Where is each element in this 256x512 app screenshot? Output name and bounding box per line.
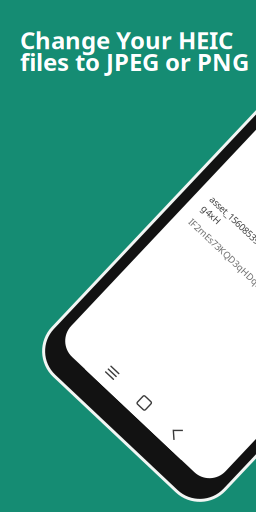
- staticText: asset_1560853911.4062061.ckJ2BWSWefdvg4x…: [185, 254, 256, 279]
- staticText: IF2mEs73KQD3qHDq.heic: [185, 285, 256, 297]
- button[interactable]: Home: [255, 439, 256, 471]
- staticText: Change Your HEIC: [20, 24, 233, 56]
- button[interactable]: Menu: [211, 439, 255, 471]
- staticText: files to JPEG or PNG: [20, 46, 249, 78]
